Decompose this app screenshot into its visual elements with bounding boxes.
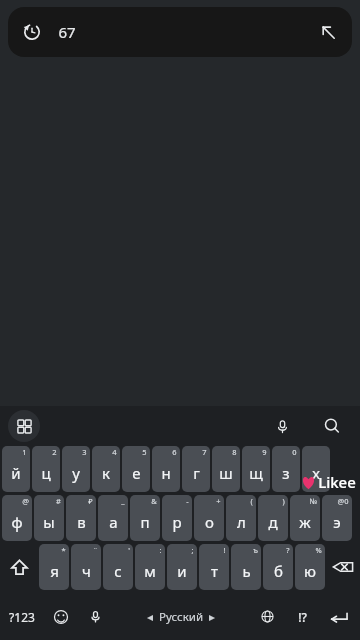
staticText: ъ — [253, 545, 258, 555]
button[interactable]: 9 — [242, 446, 270, 492]
staticText: у — [72, 463, 80, 483]
staticText: Likee — [318, 472, 356, 492]
staticText: о — [205, 512, 214, 532]
button[interactable]: History — [8, 7, 352, 57]
button[interactable]: 8 — [212, 446, 240, 492]
staticText: д — [268, 512, 278, 532]
staticText: 2 — [52, 447, 57, 457]
button[interactable]: ?123 — [0, 593, 44, 640]
button[interactable]: 0 — [272, 446, 300, 492]
staticText: ц — [41, 463, 51, 483]
button[interactable]: - — [162, 495, 192, 541]
staticText: ◂ Русский ▸ — [147, 609, 215, 625]
staticText: № — [309, 496, 317, 506]
staticText: ) — [282, 496, 285, 506]
staticText: + — [216, 496, 221, 506]
button[interactable]: % — [295, 544, 325, 590]
button[interactable]: ? — [263, 544, 293, 590]
staticText: !? — [298, 609, 307, 625]
button[interactable]: Shift — [0, 544, 39, 590]
button[interactable]: Toolbar menu — [8, 410, 40, 442]
button[interactable]: Change language — [250, 593, 284, 640]
staticText: с — [114, 561, 122, 581]
staticText: г — [193, 463, 200, 483]
button[interactable]: ◂ Русский ▸ — [112, 593, 250, 640]
staticText: % — [315, 545, 322, 555]
button[interactable]: _ — [98, 495, 128, 541]
button[interactable]: Backspace — [325, 544, 360, 590]
button[interactable]: Voice input — [266, 410, 298, 442]
button[interactable]: 6 — [152, 446, 180, 492]
staticText: 9 — [262, 447, 267, 457]
button[interactable]: @ — [2, 495, 32, 541]
button[interactable]: & — [130, 495, 160, 541]
button[interactable]: @0 — [322, 495, 352, 541]
staticText: 0 — [292, 447, 297, 457]
button[interactable]: Voice input — [78, 593, 112, 640]
staticText: ы — [43, 512, 55, 532]
staticText: в — [77, 512, 86, 532]
button[interactable]: * — [39, 544, 69, 590]
staticText: й — [11, 463, 21, 483]
staticText: # — [56, 496, 61, 506]
button[interactable]: 2 — [32, 446, 60, 492]
staticText: н — [161, 463, 171, 483]
button[interactable]: Emoji — [44, 593, 78, 640]
staticText: ¨ — [93, 545, 98, 555]
button[interactable]: + — [194, 495, 224, 541]
button[interactable]: х — [302, 446, 330, 492]
staticText: 6 — [172, 447, 177, 457]
staticText: @ — [22, 496, 29, 506]
staticText: р — [172, 512, 182, 532]
staticText: ( — [250, 496, 253, 506]
button[interactable]: Enter — [320, 593, 360, 640]
staticText: ; — [191, 545, 194, 555]
button[interactable]: Search — [316, 410, 348, 442]
button[interactable]: ! — [199, 544, 229, 590]
button[interactable]: № — [290, 495, 320, 541]
staticText: а — [109, 512, 118, 532]
staticText: п — [140, 512, 150, 532]
button[interactable]: 4 — [92, 446, 120, 492]
button[interactable]: 3 — [62, 446, 90, 492]
staticText: ч — [82, 561, 91, 581]
staticText: з — [282, 463, 290, 483]
button[interactable]: ' — [103, 544, 133, 590]
button[interactable]: 7 — [182, 446, 210, 492]
button[interactable]: # — [34, 495, 64, 541]
staticText: э — [333, 512, 341, 532]
button[interactable]: ) — [258, 495, 288, 541]
button[interactable]: ¨ — [71, 544, 101, 590]
button[interactable]: : — [135, 544, 165, 590]
staticText: ₽ — [88, 496, 93, 506]
button[interactable]: !? — [284, 593, 320, 640]
staticText: х — [312, 463, 320, 483]
staticText: 8 — [232, 447, 237, 457]
button[interactable]: ₽ — [66, 495, 96, 541]
other: History — [22, 22, 42, 42]
staticText: ю — [304, 561, 316, 581]
staticText: 1 — [22, 447, 27, 457]
staticText: е — [132, 463, 141, 483]
staticText: ф — [11, 512, 23, 532]
button[interactable]: 1 — [2, 446, 30, 492]
staticText: ь — [242, 561, 251, 581]
staticText: 3 — [82, 447, 87, 457]
staticText: : — [159, 545, 162, 555]
button[interactable]: ; — [167, 544, 197, 590]
staticText: и — [177, 561, 187, 581]
button[interactable]: ъ — [231, 544, 261, 590]
staticText: 7 — [202, 447, 207, 457]
staticText: @0 — [337, 496, 349, 506]
staticText: ж — [299, 512, 311, 532]
staticText: * — [61, 545, 66, 555]
staticText: & — [151, 496, 157, 506]
staticText: л — [237, 512, 246, 532]
staticText: 4 — [112, 447, 117, 457]
button[interactable]: ( — [226, 495, 256, 541]
staticText: т — [211, 561, 218, 581]
staticText: _ — [121, 496, 125, 506]
staticText: ?123 — [9, 609, 35, 625]
button[interactable]: 5 — [122, 446, 150, 492]
staticText: я — [50, 561, 59, 581]
